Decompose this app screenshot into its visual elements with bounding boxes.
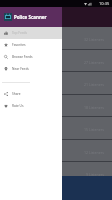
staticText: Near Feeds xyxy=(12,67,29,71)
other: App icon xyxy=(4,13,12,21)
staticText: Union Fire xyxy=(3,98,28,105)
button[interactable]: Passaic Fire xyxy=(0,162,112,184)
button[interactable]: Bergen Police xyxy=(0,140,112,161)
staticText: Share xyxy=(12,92,21,96)
button[interactable]: Near Feeds xyxy=(0,63,62,75)
staticText: 32 Listeners xyxy=(84,37,104,42)
button[interactable]: Essex Police xyxy=(0,72,112,94)
staticText: Morris County xyxy=(3,30,38,37)
staticText: Rate Us xyxy=(12,104,24,108)
button[interactable]: Top Feeds xyxy=(0,27,62,39)
staticText: Police Scanner xyxy=(14,14,47,20)
button[interactable]: Share xyxy=(0,88,62,100)
button[interactable]: Favorites xyxy=(0,39,62,51)
button[interactable]: Hudson EMS xyxy=(0,185,112,200)
staticText: 15 Listeners xyxy=(84,127,104,132)
staticText: 9 Listeners xyxy=(86,172,104,177)
staticText: Browse Feeds xyxy=(12,55,33,59)
button[interactable]: Union Fire xyxy=(0,95,112,116)
staticText: 21 Listeners xyxy=(84,82,104,87)
button[interactable]: Morris County xyxy=(0,27,112,49)
staticText: 27 Listeners xyxy=(84,60,104,65)
staticText: Top Feeds xyxy=(12,31,28,35)
staticText: 12 Listeners xyxy=(84,150,104,155)
staticText: Favorites xyxy=(12,43,26,47)
button[interactable]: Newark Police and Fire xyxy=(0,117,112,139)
button[interactable]: Rate Us xyxy=(0,100,62,112)
staticText: 18 Listeners xyxy=(84,105,104,110)
button[interactable]: Browse Feeds xyxy=(0,51,62,63)
staticText: 10:35 xyxy=(99,1,110,6)
staticText: Ramsey Sheriff xyxy=(3,53,39,60)
button[interactable]: Ramsey Sheriff xyxy=(0,50,112,71)
